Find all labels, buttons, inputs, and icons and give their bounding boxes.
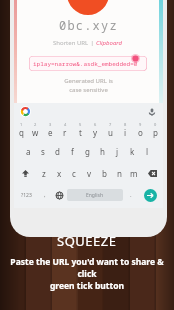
staticText: b (102, 168, 107, 179)
button[interactable]: z (37, 162, 51, 184)
button[interactable]: n (112, 162, 126, 184)
staticText: 9 (139, 122, 142, 127)
staticText: . (130, 191, 132, 199)
staticText: iplay=narrow&.asdk_embedded=0 (33, 60, 138, 68)
staticText: e (48, 127, 53, 138)
button[interactable]: m (127, 162, 141, 184)
staticText: 0bc.xyz (59, 17, 118, 33)
staticText: c (72, 168, 76, 179)
button[interactable]: j (110, 140, 124, 162)
staticText: j (116, 146, 119, 157)
staticText: a (26, 146, 31, 157)
button[interactable]: Shorten URL (53, 39, 89, 47)
button[interactable]: x (52, 162, 66, 184)
button[interactable]: Shift (15, 162, 36, 184)
staticText: x (57, 168, 62, 179)
button[interactable]: , (38, 185, 52, 205)
button[interactable]: 7 (103, 119, 117, 140)
button[interactable]: Backspace (142, 162, 162, 184)
button[interactable]: 5 (73, 119, 87, 140)
staticText: 7 (109, 122, 112, 127)
staticText: k (130, 146, 135, 157)
staticText: p (153, 127, 158, 138)
staticText: h (100, 146, 105, 157)
button[interactable]: Google (20, 106, 31, 117)
staticText: 3 (49, 122, 52, 127)
staticText: 6 (94, 122, 97, 127)
staticText: English (86, 192, 104, 199)
staticText: 4 (64, 122, 67, 127)
button[interactable]: 9 (133, 119, 147, 140)
button[interactable]: 0 (148, 119, 162, 140)
staticText: 8 (124, 122, 127, 127)
staticText: Paste the URL you'd want to share & clic… (0, 256, 174, 292)
button[interactable]: Emoji / language (53, 185, 66, 205)
staticText: l (146, 146, 149, 157)
staticText: SQUEEZE (57, 232, 117, 250)
staticText: g (85, 146, 90, 157)
button[interactable]: English (67, 189, 123, 201)
button[interactable]: b (97, 162, 111, 184)
staticText: ?123 (21, 192, 32, 199)
button[interactable]: ?123 (15, 185, 37, 205)
button[interactable]: v (82, 162, 96, 184)
button[interactable]: Voice input (146, 106, 157, 117)
staticText: 2 (34, 122, 37, 127)
button[interactable]: 2 (29, 119, 42, 140)
staticText: Generated URL is case sensitive (64, 77, 113, 94)
button[interactable]: 4 (58, 119, 72, 140)
button[interactable]: Clipboard (96, 39, 123, 47)
staticText: f (71, 146, 74, 157)
staticText: n (117, 168, 122, 179)
staticText: r (63, 127, 67, 138)
staticText: 1 (20, 122, 23, 127)
staticText: o (138, 127, 143, 138)
button[interactable]: c (67, 162, 81, 184)
staticText: u (108, 127, 113, 138)
button[interactable]: k (125, 140, 139, 162)
button[interactable]: 3 (43, 119, 57, 140)
button[interactable]: d (50, 140, 64, 162)
button[interactable]: f (65, 140, 79, 162)
staticText: 5 (79, 122, 82, 127)
staticText: v (87, 168, 92, 179)
button[interactable]: Enter (144, 189, 157, 202)
button[interactable]: s (36, 140, 49, 162)
staticText: q (19, 127, 24, 138)
staticText: | (89, 39, 96, 47)
button[interactable]: 8 (118, 119, 132, 140)
staticText: d (55, 146, 60, 157)
button[interactable]: iplay=narrow&.asdk_embedded=0 (29, 56, 147, 71)
button[interactable]: 6 (88, 119, 102, 140)
staticText: m (130, 168, 138, 179)
button[interactable]: g (80, 140, 94, 162)
staticText: w (32, 127, 39, 138)
staticText: y (93, 127, 98, 138)
button[interactable]: l (140, 140, 154, 162)
staticText: 0 (154, 122, 157, 127)
staticText: t (79, 127, 82, 138)
button[interactable]: a (22, 140, 35, 162)
staticText: i (124, 127, 127, 138)
staticText: , (44, 191, 46, 199)
staticText: z (42, 168, 46, 179)
button[interactable]: 1 (15, 119, 28, 140)
staticText: s (41, 146, 45, 157)
button[interactable]: h (95, 140, 109, 162)
